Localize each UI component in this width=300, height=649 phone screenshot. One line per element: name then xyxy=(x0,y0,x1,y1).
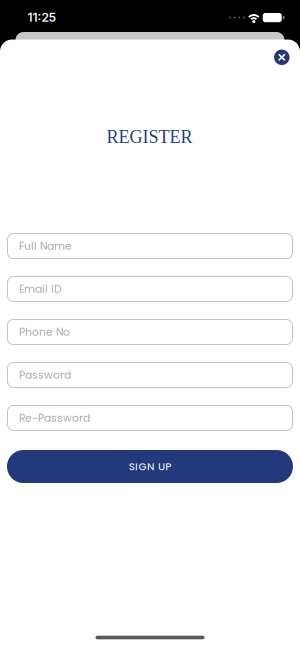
button[interactable]: Full Name xyxy=(7,233,293,259)
button[interactable] xyxy=(274,49,290,65)
staticText: Phone No xyxy=(19,324,70,339)
button[interactable]: Password xyxy=(7,362,293,388)
staticText: Full Name xyxy=(19,238,72,253)
staticText: REGISTER xyxy=(106,127,192,147)
button[interactable]: SIGN UP xyxy=(7,450,293,483)
staticText: 11:25 xyxy=(27,10,56,24)
button[interactable]: Phone No xyxy=(7,319,293,345)
staticText: Email ID xyxy=(19,281,62,296)
staticText: SIGN UP xyxy=(129,459,171,474)
button[interactable]: Email ID xyxy=(7,276,293,302)
button[interactable]: Re-Password xyxy=(7,405,293,431)
staticText: Password xyxy=(19,367,71,382)
staticText: Re-Password xyxy=(19,410,90,425)
